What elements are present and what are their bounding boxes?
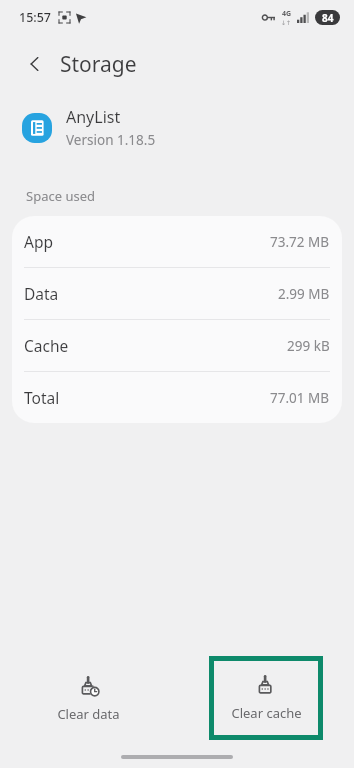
staticText: 299 kB (287, 337, 330, 355)
staticText: Cache (24, 335, 69, 356)
staticText: Version 1.18.5 (66, 131, 156, 149)
staticText: 4G (282, 9, 292, 19)
button[interactable]: Data (12, 268, 342, 319)
staticText: Storage (60, 50, 137, 79)
staticText: 2.99 MB (278, 285, 330, 303)
staticText: Clear cache (231, 704, 302, 722)
staticText: Clear data (57, 705, 120, 723)
staticText: 15:57 (19, 9, 52, 26)
staticText: ↓↑ (281, 19, 292, 26)
staticText: Space used (26, 187, 95, 205)
button[interactable]: Cache (12, 320, 342, 371)
button[interactable]: Back (18, 47, 52, 81)
staticText: 77.01 MB (270, 389, 330, 407)
staticText: Data (24, 283, 59, 304)
staticText: 73.72 MB (270, 233, 330, 251)
staticText: Total (24, 387, 60, 408)
staticText: AnyList (66, 106, 121, 128)
button[interactable]: App (12, 216, 342, 267)
button[interactable]: Clear cache (209, 656, 323, 740)
button[interactable]: Clear data (35, 668, 142, 731)
staticText: 84 (322, 11, 334, 25)
staticText: App (24, 231, 53, 252)
button[interactable]: Total (12, 372, 342, 423)
